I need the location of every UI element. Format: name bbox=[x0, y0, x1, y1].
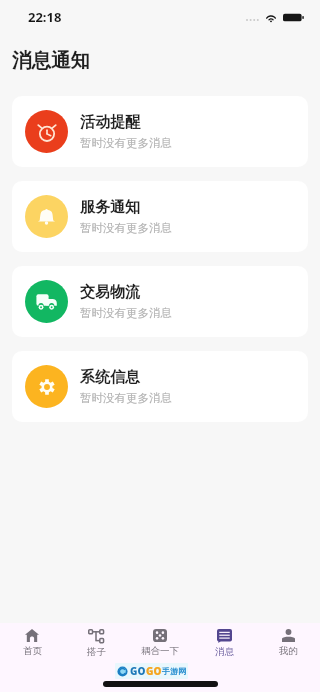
button[interactable]: 搭子 bbox=[67, 629, 125, 658]
staticText: 交易物流 bbox=[80, 283, 140, 302]
staticText: 暂时没有更多消息 bbox=[80, 306, 172, 320]
button[interactable]: 服务通知 bbox=[12, 181, 308, 252]
button[interactable]: 消息 bbox=[195, 629, 253, 658]
button[interactable]: 我的 bbox=[259, 629, 317, 657]
staticText: GO bbox=[130, 664, 146, 678]
staticText: 消息通知 bbox=[12, 48, 90, 73]
button[interactable]: 交易物流 bbox=[12, 266, 308, 337]
staticText: 耦合一下 bbox=[141, 645, 179, 657]
button[interactable]: 首页 bbox=[3, 629, 61, 657]
staticText: 服务通知 bbox=[80, 198, 140, 217]
button[interactable]: 活动提醒 bbox=[12, 96, 308, 167]
staticText: 首页 bbox=[23, 645, 42, 657]
staticText: 我的 bbox=[279, 645, 298, 657]
staticText: 暂时没有更多消息 bbox=[80, 221, 172, 235]
staticText: 系统信息 bbox=[80, 368, 140, 387]
button[interactable]: 耦合一下 bbox=[131, 629, 189, 657]
staticText: 22:18 bbox=[28, 8, 62, 26]
button[interactable]: 系统信息 bbox=[12, 351, 308, 422]
staticText: 暂时没有更多消息 bbox=[80, 391, 172, 405]
staticText: 手游网 bbox=[162, 666, 186, 676]
staticText: 搭子 bbox=[87, 646, 106, 658]
staticText: 消息 bbox=[215, 646, 234, 658]
staticText: 活动提醒 bbox=[80, 113, 140, 132]
staticText: GO bbox=[146, 664, 162, 678]
staticText: 暂时没有更多消息 bbox=[80, 136, 172, 150]
